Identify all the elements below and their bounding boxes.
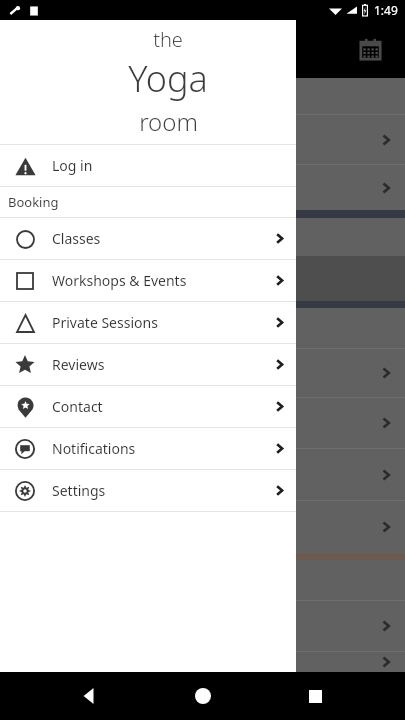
staticText: Yoga bbox=[128, 54, 208, 103]
button[interactable]: Recents bbox=[292, 673, 338, 719]
button[interactable]: Calendar bbox=[353, 32, 387, 66]
staticText: Private Sessions bbox=[52, 313, 158, 332]
button[interactable]: Classes bbox=[0, 218, 296, 259]
button[interactable]: Notifications bbox=[0, 428, 296, 469]
staticText: Reviews bbox=[52, 355, 105, 374]
button[interactable]: Workshops & Events bbox=[0, 260, 296, 301]
button[interactable]: Log in bbox=[0, 145, 296, 186]
button[interactable]: Settings bbox=[0, 470, 296, 511]
staticText: the bbox=[153, 26, 183, 53]
button[interactable]: Home bbox=[180, 673, 226, 719]
staticText: Workshops & Events bbox=[52, 271, 187, 290]
staticText: room bbox=[139, 105, 198, 138]
staticText: Notifications bbox=[52, 439, 136, 458]
button[interactable]: Back bbox=[67, 673, 113, 719]
button[interactable]: Reviews bbox=[0, 344, 296, 385]
button[interactable]: Contact bbox=[0, 386, 296, 427]
staticText: Contact bbox=[52, 397, 103, 416]
staticText: Log in bbox=[52, 156, 93, 175]
staticText: Settings bbox=[52, 481, 106, 500]
staticText: Booking bbox=[8, 193, 59, 211]
button[interactable]: Private Sessions bbox=[0, 302, 296, 343]
staticText: 1:49 bbox=[374, 2, 398, 18]
staticText: Classes bbox=[52, 229, 101, 248]
